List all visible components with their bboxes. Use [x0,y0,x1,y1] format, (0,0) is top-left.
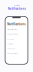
staticText: Notifications [7,22,25,26]
staticText: Grouping [7,38,14,40]
button[interactable]: Announce [7,48,26,50]
staticText: Notifications [7,7,25,10]
staticText: Siri Suggestions [7,53,18,54]
button[interactable]: Grouping [7,38,26,40]
button[interactable]: Show Previews [7,33,26,35]
staticText: Show Previews [7,33,18,35]
button[interactable]: Siri Suggestions [7,53,26,55]
staticText: Announce [7,48,15,50]
staticText: Allow Notifications [7,29,18,30]
button[interactable]: Summary [7,43,26,45]
staticText: Summary [7,43,14,45]
button[interactable]: Allow Notifications [7,29,26,31]
staticText: Preview [13,5,19,6]
